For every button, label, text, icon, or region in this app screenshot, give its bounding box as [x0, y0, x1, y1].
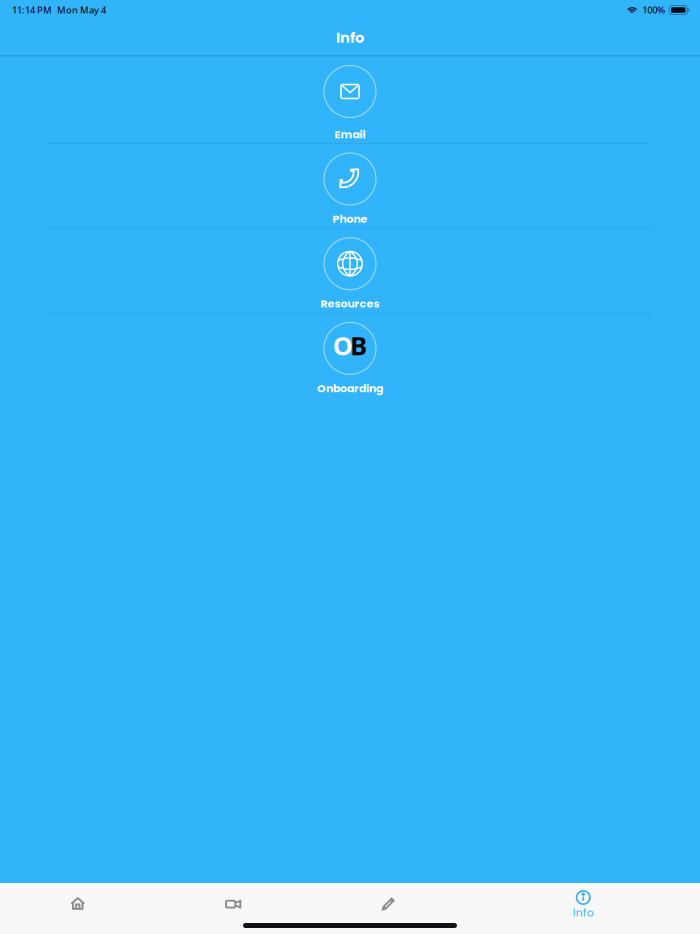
button[interactable]: Compose: [311, 883, 466, 923]
button[interactable]: Video: [155, 883, 311, 923]
button[interactable]: Onboarding: [0, 313, 700, 398]
button[interactable]: Info: [505, 883, 661, 923]
staticText: Info: [336, 27, 364, 48]
staticText: 11:14 PM: [12, 4, 52, 16]
staticText: Resources: [320, 296, 379, 311]
staticText: O: [333, 329, 353, 362]
staticText: Info: [573, 905, 594, 920]
button[interactable]: Phone: [0, 144, 700, 229]
button[interactable]: Resources: [0, 229, 700, 313]
button[interactable]: Email: [0, 56, 700, 144]
staticText: 100%: [642, 4, 665, 16]
staticText: Email: [334, 127, 365, 142]
staticText: Phone: [332, 211, 367, 227]
staticText: Mon May 4: [57, 4, 106, 16]
staticText: B: [350, 329, 367, 362]
staticText: Onboarding: [317, 381, 383, 396]
button[interactable]: Home: [0, 883, 155, 923]
